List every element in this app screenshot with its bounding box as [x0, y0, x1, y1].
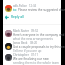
- staticText: 08:20: [30, 41, 38, 45]
- staticText: Got a couple proposals to try this week …: [13, 45, 65, 49]
- button[interactable]: Christopher: [3, 53, 61, 65]
- staticText: Christopher: [13, 53, 29, 57]
- staticText: 12:34: [29, 4, 37, 8]
- staticText: Reply all: [11, 15, 24, 19]
- staticText: Jonas Beck: [13, 41, 28, 45]
- staticText: Tell me if you are up: [13, 49, 42, 53]
- button[interactable]: Mark Xavier: [3, 29, 61, 41]
- button[interactable]: adb.Police: [3, 3, 61, 14]
- other: Reply: [5, 15, 9, 19]
- staticText: 09:52: [31, 29, 39, 33]
- button[interactable]: Reply: [3, 14, 24, 19]
- staticText: We are finalizing our new: [13, 57, 49, 61]
- staticText: Mark Xavier: [13, 29, 29, 33]
- staticText: what the new arrangements: [13, 37, 53, 41]
- staticText: adb.Police: [13, 4, 27, 8]
- staticText: Here's everyone in the company and when: [13, 33, 65, 37]
- staticText: 07:11: [31, 53, 39, 57]
- staticText: sending them to the whole team: [13, 61, 59, 65]
- staticText: Please review the suggested changes: [18, 8, 65, 12]
- staticText: to:: [13, 8, 17, 12]
- button[interactable]: Jonas Beck: [3, 41, 61, 53]
